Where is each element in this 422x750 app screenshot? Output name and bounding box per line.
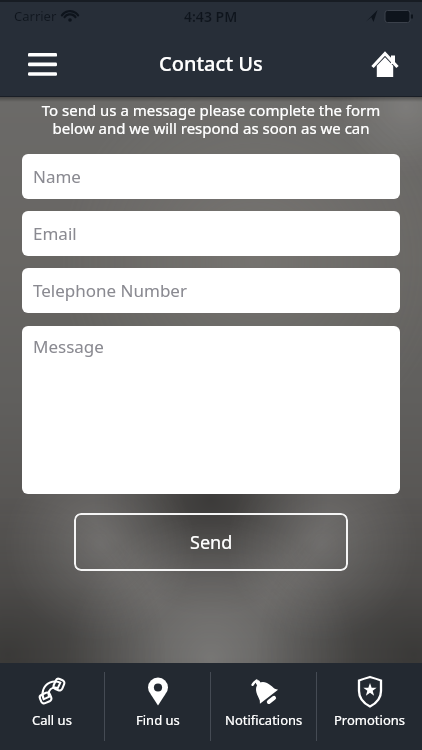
button[interactable]: [365, 42, 405, 86]
button[interactable]: Name: [22, 154, 400, 199]
staticText: Promotions: [334, 711, 406, 729]
staticText: To send us a message please complete the…: [0, 100, 422, 139]
staticText: Contact Us: [159, 50, 263, 77]
button[interactable]: Call us: [0, 663, 104, 750]
staticText: Call us: [32, 711, 72, 729]
button[interactable]: Notifications: [211, 663, 316, 750]
staticText: Telephone Number: [33, 279, 187, 302]
button[interactable]: Promotions: [317, 663, 422, 750]
button[interactable]: Send: [74, 513, 348, 571]
staticText: Email: [33, 222, 77, 245]
staticText: 4:43 PM: [184, 7, 238, 26]
button[interactable]: [20, 42, 64, 86]
button[interactable]: Message: [22, 326, 400, 494]
staticText: Carrier: [14, 7, 57, 25]
button[interactable]: Telephone Number: [22, 268, 400, 313]
staticText: Message: [33, 335, 104, 358]
staticText: Find us: [136, 711, 180, 729]
staticText: Name: [33, 165, 81, 188]
staticText: Notifications: [225, 711, 303, 729]
button[interactable]: Email: [22, 211, 400, 256]
staticText: Send: [190, 530, 233, 555]
button[interactable]: Find us: [105, 663, 210, 750]
